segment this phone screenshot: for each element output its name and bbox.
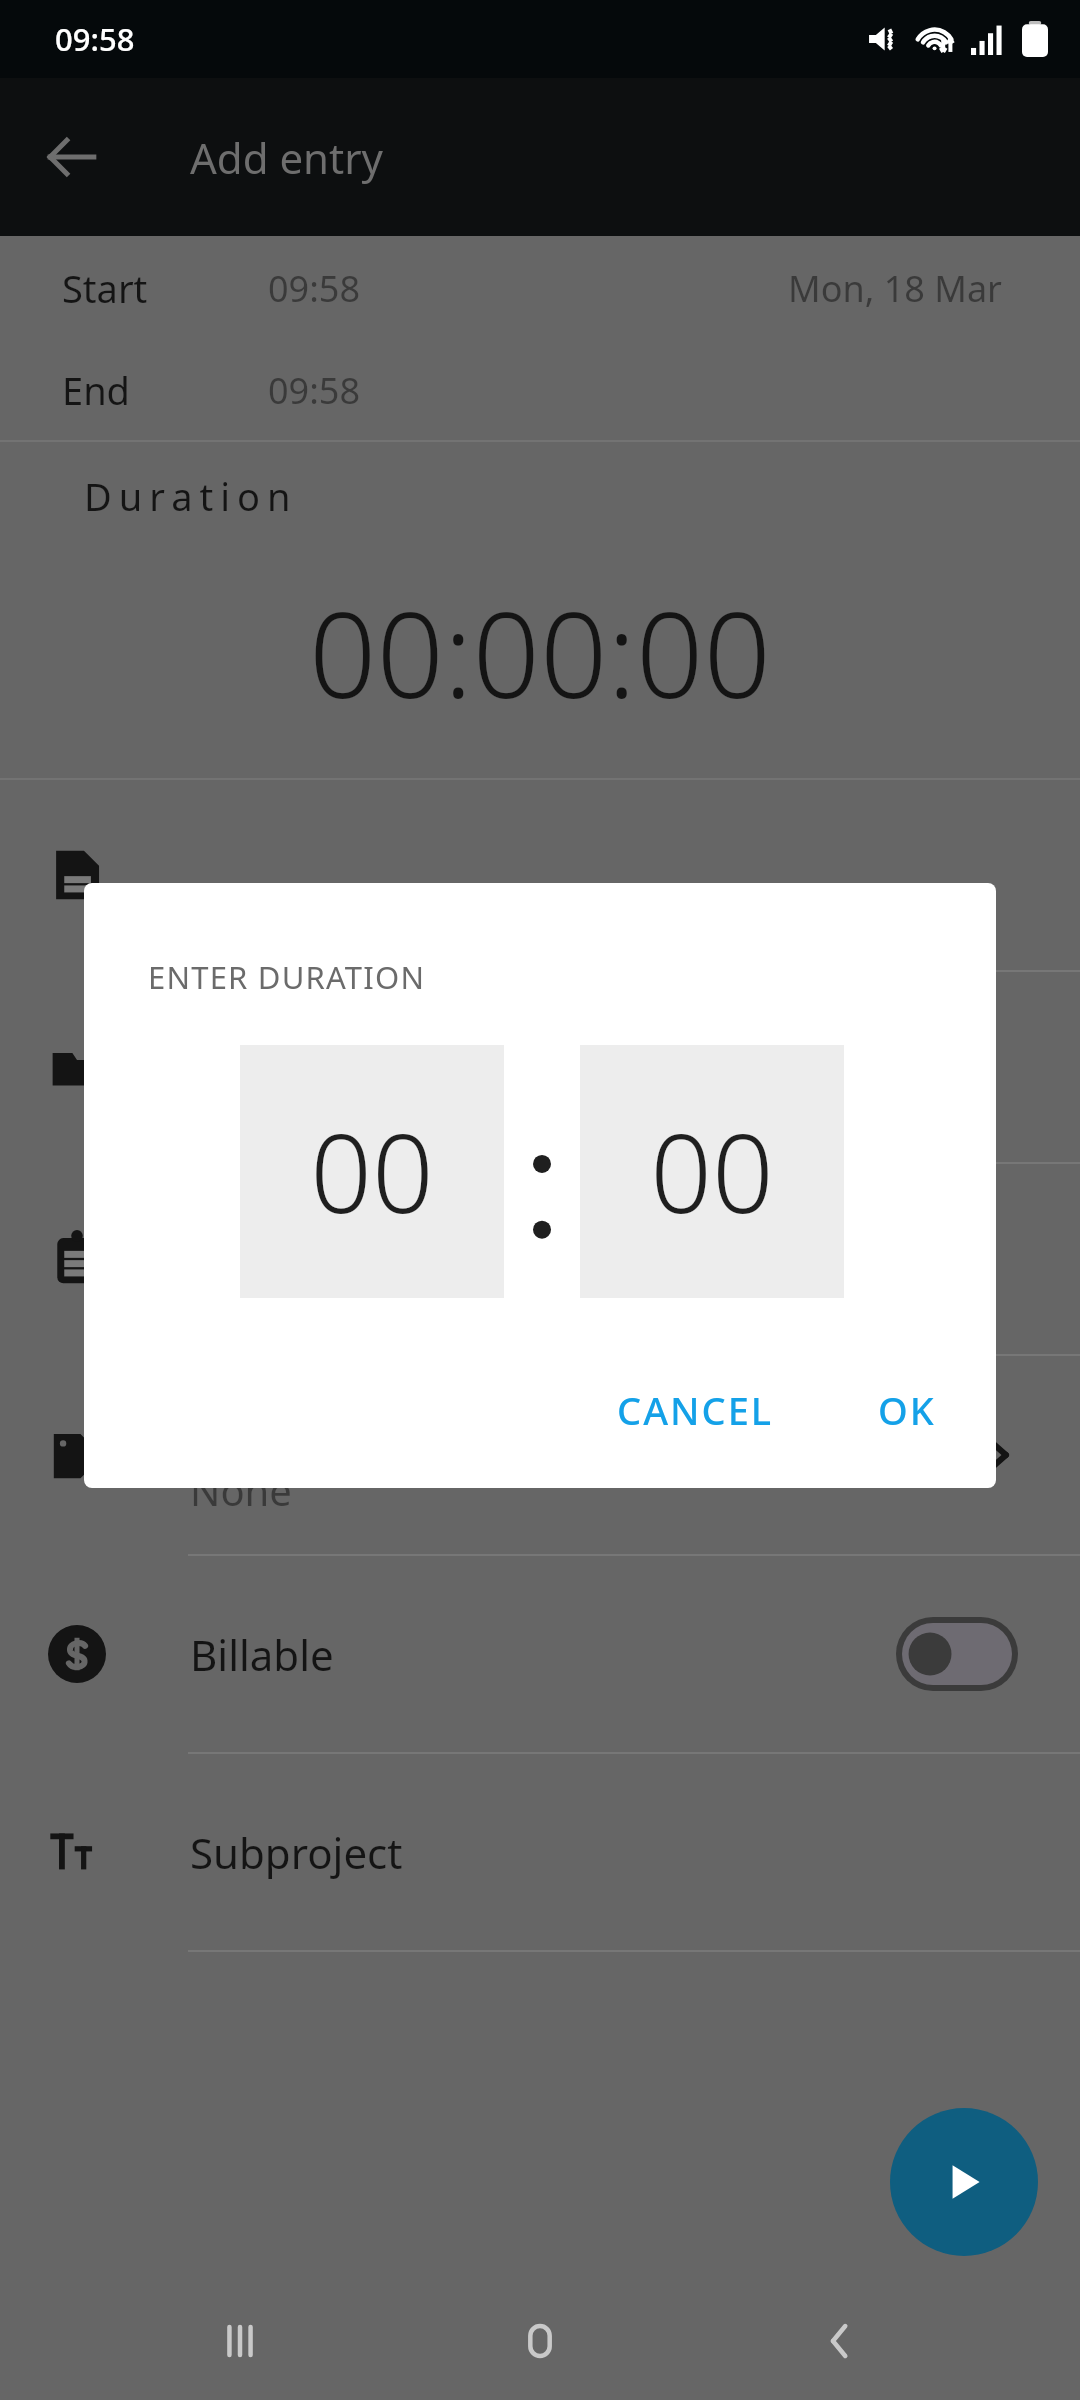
staticText: Subproject <box>190 1824 403 1881</box>
button[interactable] <box>0 780 1080 970</box>
button[interactable]: 00 <box>580 1045 844 1298</box>
button[interactable]: OK <box>854 1366 960 1454</box>
button[interactable]: Tags <box>0 1356 1080 1554</box>
button[interactable]: CANCEL <box>593 1366 798 1454</box>
button[interactable]: Subproject <box>0 1754 1080 1950</box>
button[interactable] <box>0 972 1080 1162</box>
button[interactable] <box>896 1617 1018 1691</box>
button[interactable]: Billable <box>0 1556 1080 1752</box>
staticText: Billable <box>190 1626 334 1683</box>
button[interactable]: Recents <box>180 2282 300 2400</box>
staticText: End <box>62 364 130 416</box>
staticText: 00:00:00 <box>309 572 771 733</box>
button[interactable]: Start timer <box>890 2108 1038 2256</box>
staticText: Start <box>62 262 148 314</box>
staticText: 00 <box>650 1098 774 1245</box>
staticText: 00 <box>310 1098 434 1245</box>
button[interactable]: Back <box>26 111 118 203</box>
button[interactable] <box>0 1164 1080 1354</box>
staticText: 09:58 <box>268 264 361 313</box>
staticText: 09:58 <box>55 18 135 60</box>
staticText: CANCEL <box>617 1384 774 1436</box>
button[interactable]: Back <box>780 2282 900 2400</box>
staticText: 09:58 <box>268 366 361 415</box>
staticText: ENTER DURATION <box>148 956 426 998</box>
button[interactable]: 00 <box>240 1045 504 1298</box>
staticText: OK <box>878 1384 936 1436</box>
button[interactable]: Home <box>480 2282 600 2400</box>
staticText: Mon, 18 Mar <box>788 264 1002 313</box>
staticText: None <box>190 1463 292 1517</box>
staticText: Add entry <box>190 129 383 186</box>
staticText: Duration <box>84 470 298 522</box>
